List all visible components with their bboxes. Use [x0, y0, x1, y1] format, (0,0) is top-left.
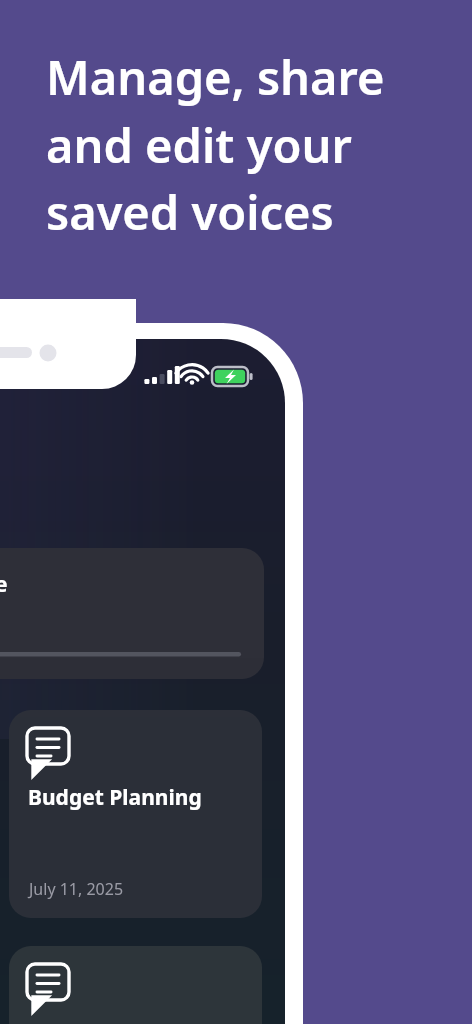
staticText: e [0, 570, 8, 599]
staticText: July 11, 2025 [29, 878, 124, 900]
button[interactable] [9, 946, 262, 1024]
staticText: Budget Planning [28, 783, 202, 812]
other: Voice note [27, 964, 69, 1012]
staticText: Manage, share and edit your saved voices [46, 45, 385, 243]
button[interactable] [9, 710, 262, 918]
other: Voice note [27, 728, 69, 776]
